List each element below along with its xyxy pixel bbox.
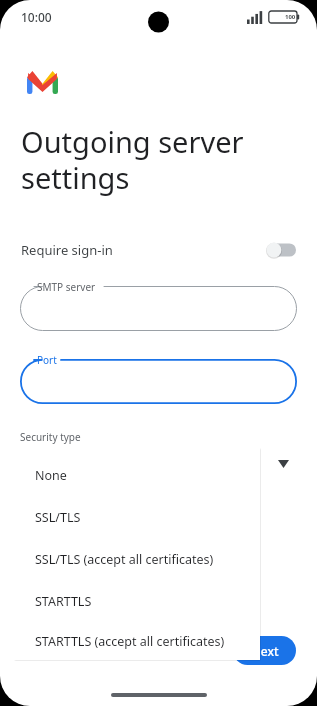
button[interactable]: STARTTLS (accept all certificates) [14,622,260,660]
button[interactable]: SSL/TLS (accept all certificates) [14,538,260,580]
staticText: 10:00 [21,9,52,25]
button[interactable]: None [14,454,260,496]
other: Gmail [27,70,58,94]
button[interactable]: Require sign-in [0,231,317,269]
button[interactable]: SMTP server [20,286,297,331]
staticText: Port [37,353,57,367]
button[interactable]: SSL/TLS [14,496,260,538]
staticText: SMTP server [37,280,96,294]
staticText: Require sign-in [21,241,113,259]
button[interactable]: STARTTLS [14,580,260,622]
staticText: STARTTLS (accept all certificates) [35,633,225,650]
staticText: STARTTLS [35,593,92,610]
staticText: Security type [20,430,81,444]
staticText: 100 [285,13,296,21]
button[interactable]: Require sign-in toggle [266,242,296,258]
button[interactable]: Port [20,359,297,404]
staticText: SSL/TLS [35,509,81,526]
staticText: Outgoing server settings [21,122,287,198]
button[interactable]: Next [233,636,296,665]
staticText: SSL/TLS (accept all certificates) [35,551,214,568]
button[interactable]: Expand security type [278,460,289,468]
staticText: None [35,467,67,484]
staticText: Next [251,643,279,659]
